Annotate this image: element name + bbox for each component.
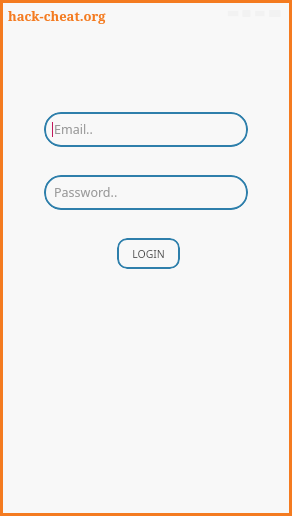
staticText: Email.. — [54, 121, 93, 138]
button[interactable]: Email.. — [44, 112, 248, 147]
button[interactable]: Login — [117, 238, 180, 269]
staticText: LOGIN — [132, 247, 165, 261]
button[interactable]: Password.. — [44, 175, 248, 210]
staticText: hack-cheat.org — [8, 7, 106, 25]
staticText: Password.. — [54, 184, 118, 201]
